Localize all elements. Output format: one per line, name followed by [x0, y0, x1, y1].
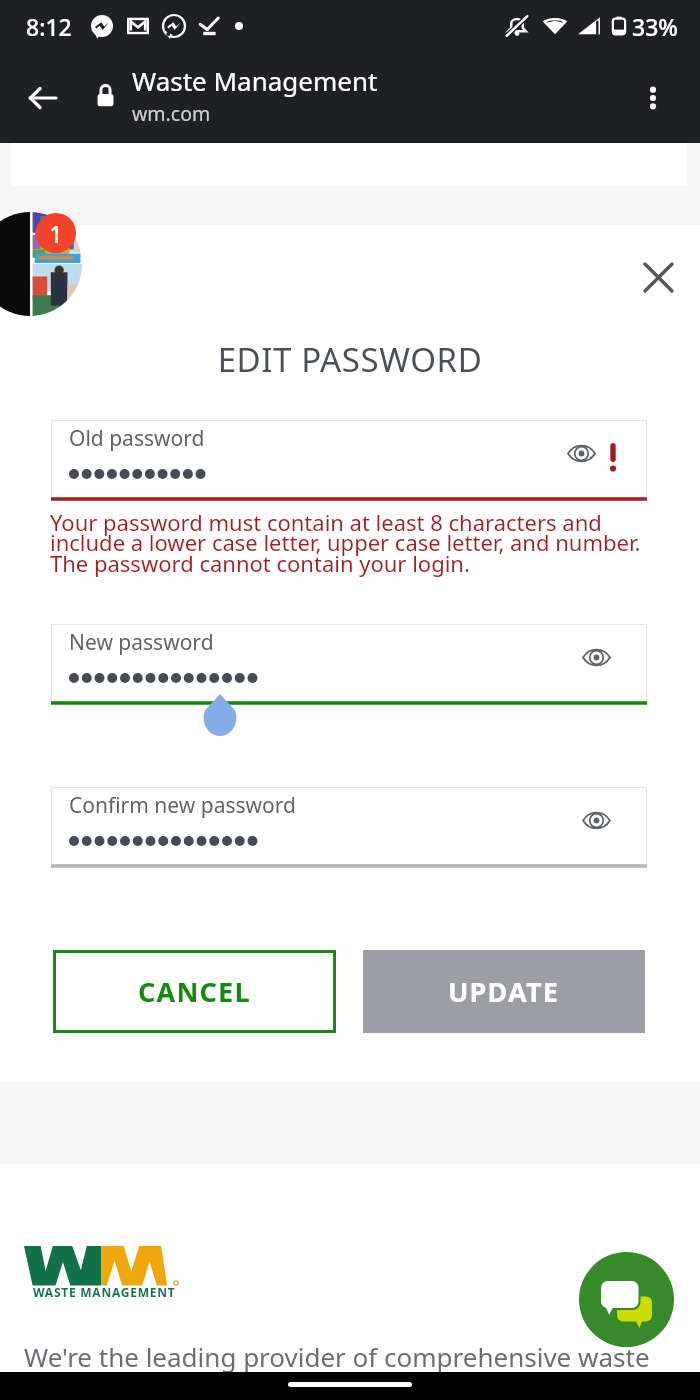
staticText: 1 [49, 217, 63, 250]
button[interactable]: Old password [51, 420, 647, 498]
button[interactable]: New password [51, 624, 647, 702]
staticText: Old password [69, 424, 205, 453]
staticText: 33% [632, 11, 678, 42]
button[interactable]: Chat with us [579, 1252, 674, 1347]
button[interactable]: Close [630, 249, 686, 305]
staticText: Your password must contain at least 8 ch… [50, 507, 641, 579]
staticText: CANCEL [138, 973, 251, 1010]
button[interactable]: CANCEL [53, 950, 336, 1033]
button[interactable]: Show password [568, 637, 624, 677]
staticText: WASTE MANAGEMENT [33, 1284, 233, 1300]
staticText: EDIT PASSWORD [0, 337, 700, 382]
staticText: 8:12 [26, 11, 72, 42]
staticText: New password [69, 628, 214, 657]
staticText: wm.com [132, 100, 211, 127]
button[interactable]: Messenger chat head [0, 212, 82, 316]
button[interactable]: UPDATE [363, 950, 645, 1033]
button[interactable]: Show password [568, 800, 624, 840]
button[interactable]: Show password [553, 433, 609, 473]
staticText: We're the leading provider of comprehens… [24, 1339, 700, 1374]
staticText: Waste Management [132, 63, 378, 98]
staticText: Confirm new password [69, 791, 296, 820]
button[interactable]: Back [18, 73, 68, 123]
staticText: UPDATE [448, 973, 560, 1010]
button[interactable]: Confirm new password [51, 787, 647, 865]
button[interactable]: More options [628, 73, 678, 123]
